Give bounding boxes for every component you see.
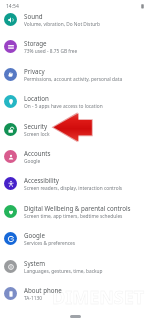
staticText: 14:54	[6, 3, 19, 10]
staticText: Sound	[24, 12, 43, 20]
button[interactable]: Storage	[0, 33, 154, 60]
staticText: Google	[24, 231, 45, 239]
staticText: System	[24, 259, 46, 267]
staticText: Languages, gestures, time, backup	[24, 268, 103, 275]
button[interactable]: Accessibility	[0, 170, 154, 197]
button[interactable]: Sound	[0, 6, 154, 33]
staticText: Permissions, account activity, personal …	[24, 76, 123, 83]
button[interactable]: System	[0, 253, 154, 280]
staticText: Storage	[24, 39, 47, 47]
staticText: Location	[24, 94, 49, 102]
staticText: Screen readers, display, interaction con…	[24, 185, 123, 192]
button[interactable]: Digital Wellbeing & parental controls	[0, 198, 154, 225]
other: Pointer	[0, 0, 154, 326]
staticText: DIMENSET	[52, 285, 145, 310]
staticText: Services & preferences	[24, 240, 76, 247]
staticText: TA-1130	[24, 295, 42, 302]
staticText: On - 5 apps have access to location	[24, 103, 103, 110]
staticText: Digital Wellbeing & parental controls	[24, 204, 131, 212]
button[interactable]: Accounts	[0, 143, 154, 170]
staticText: Screen time, app timers, bedtime schedul…	[24, 213, 123, 220]
staticText: Accounts	[24, 149, 51, 157]
staticText: Accessibility	[24, 176, 59, 184]
staticText: 73% used - 8.75 GB free	[24, 48, 78, 55]
button[interactable]: Security	[0, 116, 154, 143]
staticText: Screen lock	[24, 131, 50, 138]
button[interactable]: About phone	[0, 280, 154, 307]
button[interactable]: Privacy	[0, 61, 154, 88]
button[interactable]: Google	[0, 225, 154, 252]
button[interactable]: Location	[0, 88, 154, 115]
staticText: Security	[24, 122, 48, 130]
staticText: Volume, vibration, Do Not Disturb	[24, 21, 101, 28]
staticText: About phone	[24, 286, 62, 294]
staticText: Privacy	[24, 67, 45, 75]
staticText: Google	[24, 158, 41, 165]
